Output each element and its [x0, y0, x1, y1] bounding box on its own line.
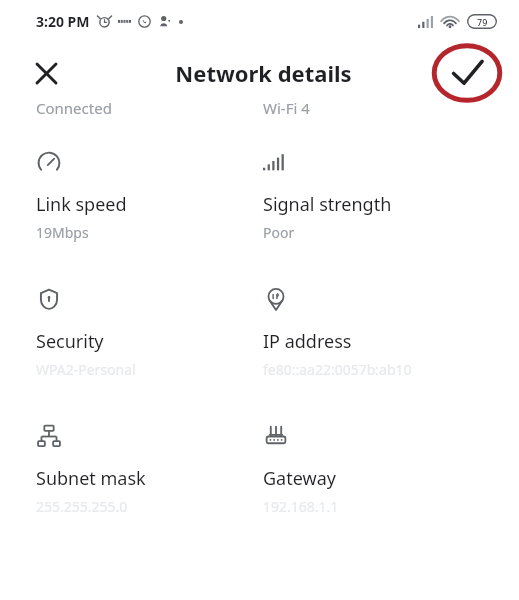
staticText: 79	[477, 16, 488, 28]
staticText: Security	[36, 329, 104, 354]
staticText: Poor	[263, 223, 295, 242]
button[interactable]: Gateway	[263, 423, 511, 516]
button[interactable]: Link speed	[36, 149, 251, 242]
staticText: 192.168.1.1	[263, 497, 339, 516]
staticText: Link speed	[36, 192, 127, 217]
button[interactable]: IP address	[263, 286, 511, 379]
staticText: 255.255.255.0	[36, 497, 128, 516]
staticText: Signal strength	[263, 192, 392, 217]
button[interactable]: Close	[22, 49, 70, 97]
staticText: 3:20 PM	[36, 12, 90, 31]
staticText: Gateway	[263, 466, 336, 491]
staticText: WPA2-Personal	[36, 360, 136, 379]
button[interactable]: Subnet mask	[36, 423, 251, 516]
staticText: Wi-Fi 4	[263, 98, 310, 118]
staticText: Connected	[36, 98, 112, 118]
button[interactable]: Save	[427, 44, 507, 102]
staticText: Network details	[175, 58, 352, 88]
staticText: 19Mbps	[36, 223, 89, 242]
staticText: fe80::aa22:0057b:ab10	[263, 360, 412, 379]
button[interactable]: Security	[36, 286, 251, 379]
staticText: Subnet mask	[36, 466, 146, 491]
staticText: IP address	[263, 329, 352, 354]
button[interactable]: Signal strength	[263, 149, 511, 242]
